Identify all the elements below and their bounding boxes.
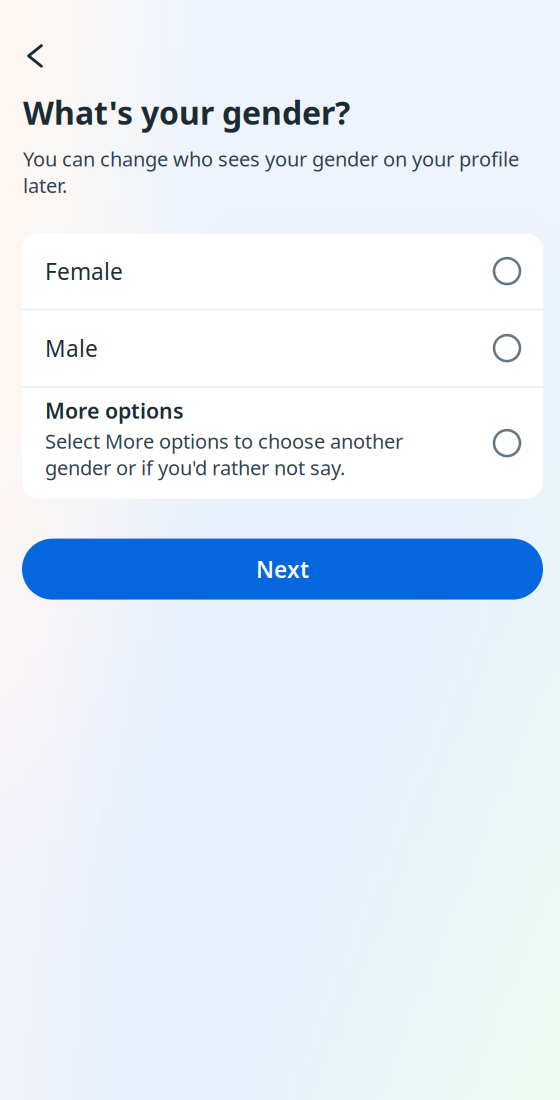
staticText: Select More options to choose another ge…	[45, 428, 403, 481]
button[interactable]: Back	[12, 34, 58, 78]
staticText: You can change who sees your gender on y…	[23, 145, 519, 199]
staticText: Female	[45, 256, 123, 286]
button[interactable]: Male	[22, 310, 543, 386]
staticText: More options	[45, 396, 184, 425]
staticText: What's your gender?	[23, 91, 350, 133]
button[interactable]: Female	[22, 234, 543, 309]
staticText: Male	[45, 333, 98, 363]
button[interactable]: More options	[22, 388, 543, 499]
staticText: Next	[256, 554, 309, 584]
button[interactable]: Next	[22, 539, 543, 600]
